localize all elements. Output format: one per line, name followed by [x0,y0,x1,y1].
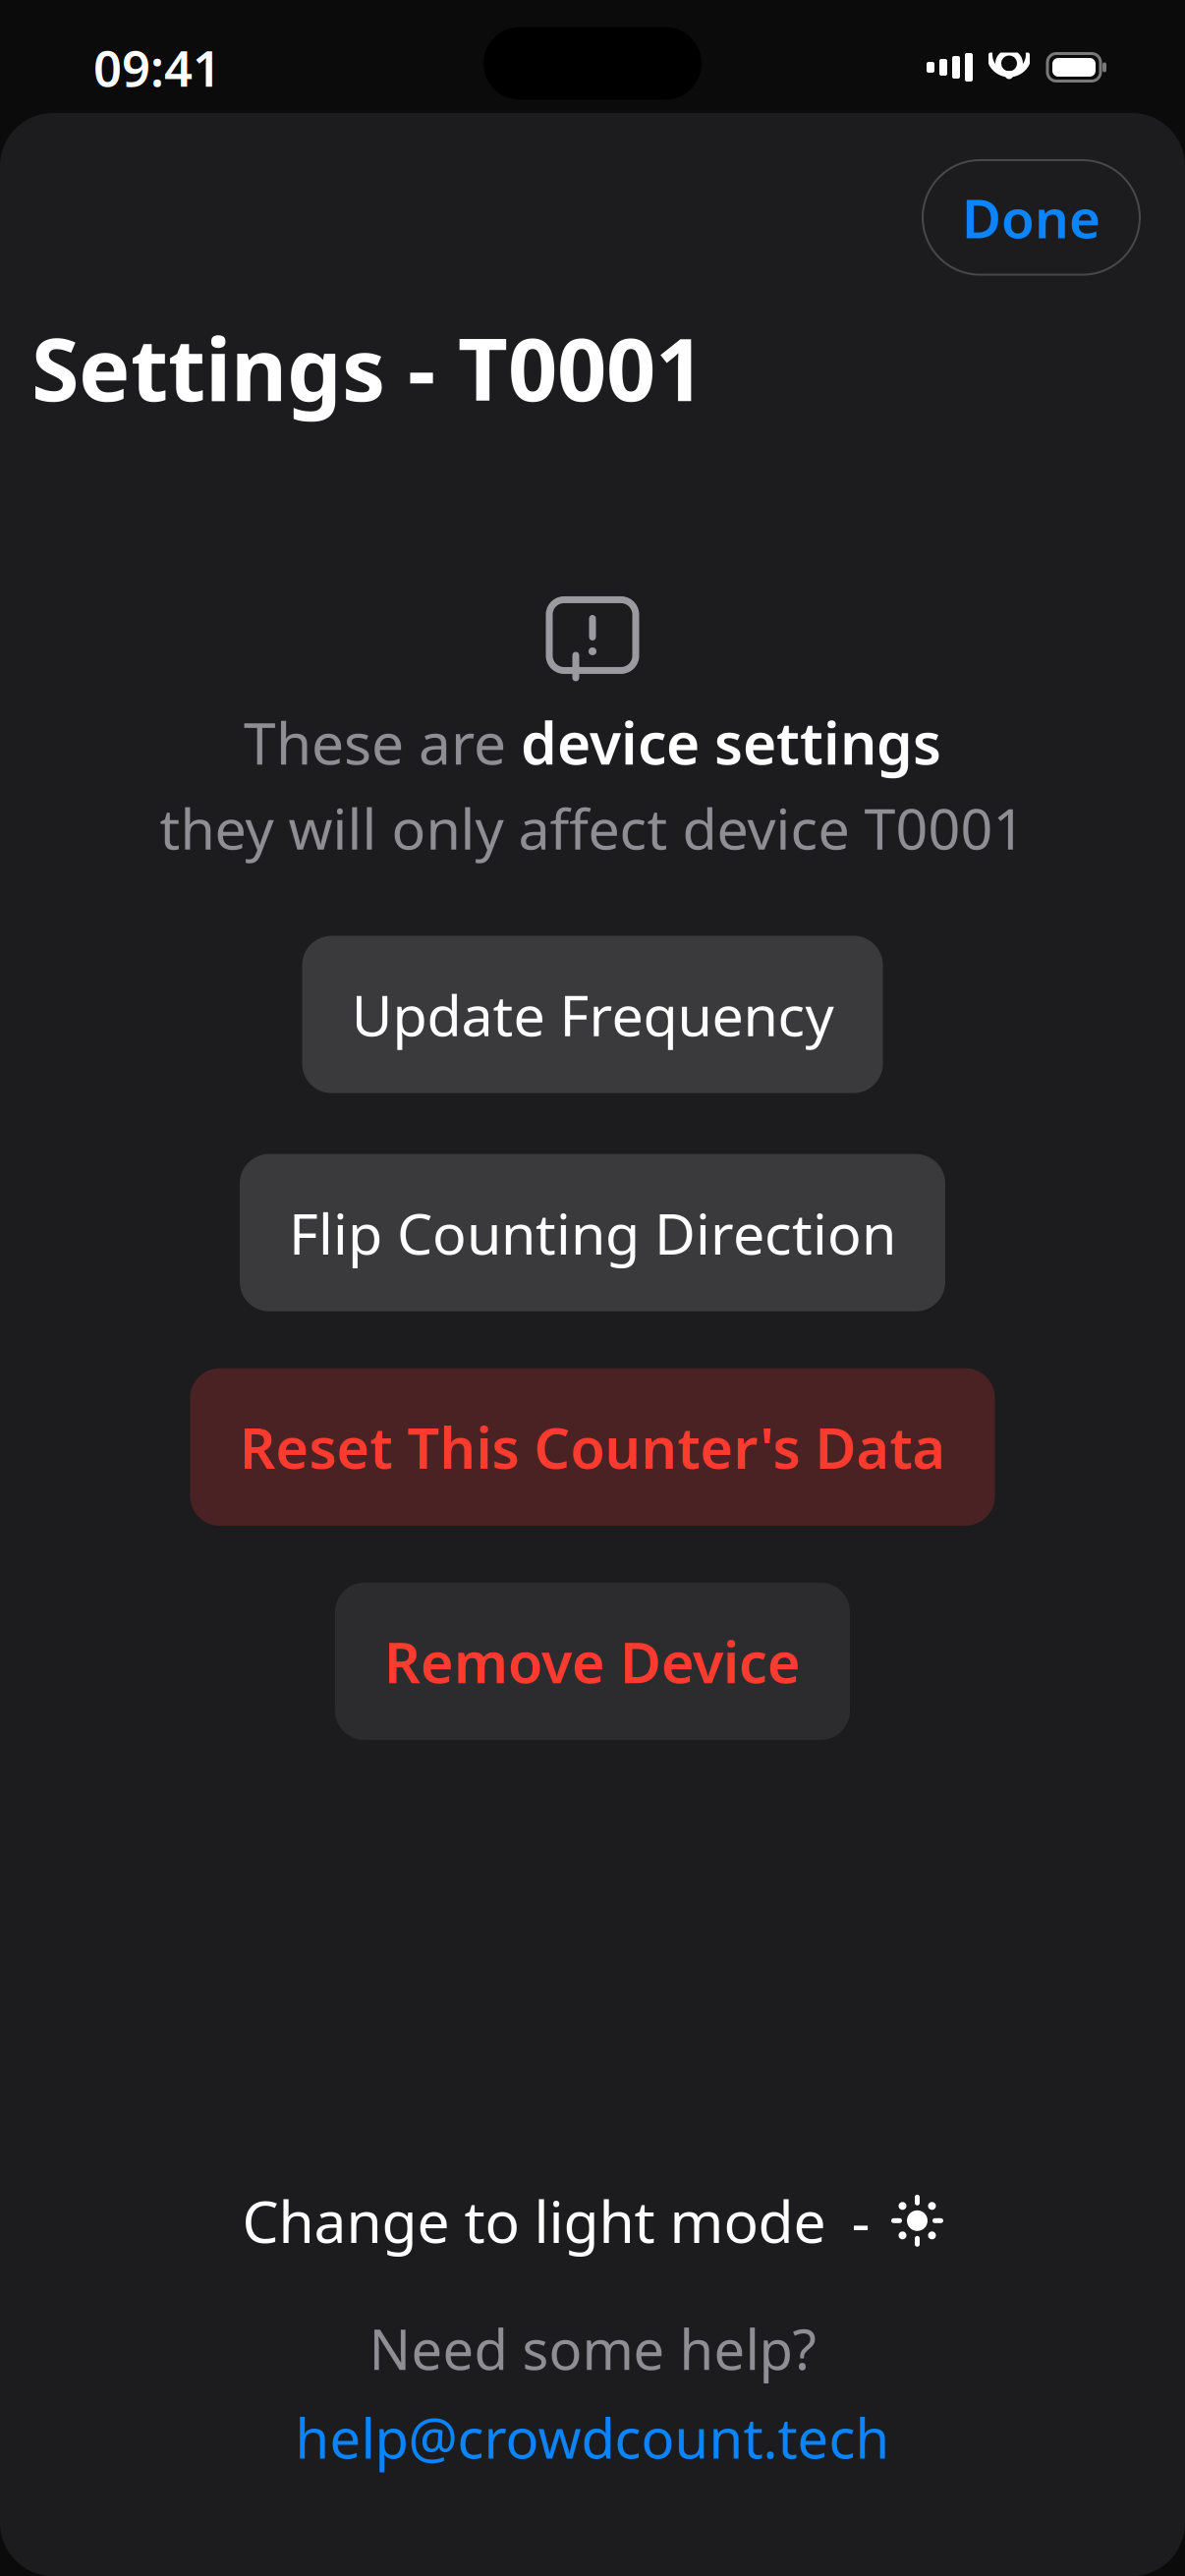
staticText: - [851,2182,870,2259]
button[interactable]: Flip Counting Direction [240,1154,945,1311]
staticText: Remove Device [384,1624,801,1699]
staticText: Reset This Counter's Data [239,1410,946,1484]
staticText: they will only affect device T0001 [160,790,1025,865]
staticText: Change to light mode [242,2182,826,2259]
button[interactable]: help@crowdcount.tech [285,2397,900,2478]
staticText: Update Frequency [351,977,834,1052]
button[interactable]: Update Frequency [302,936,883,1093]
staticText: 09:41 [93,34,221,100]
button[interactable]: Done [923,160,1140,275]
button[interactable]: Reset This Counter's Data [190,1368,995,1526]
button[interactable]: Remove Device [335,1583,850,1740]
staticText: Flip Counting Direction [289,1195,896,1270]
staticText: Settings - T0001 [31,310,705,425]
button[interactable]: Change to light mode [230,2173,955,2269]
staticText: device settings [521,704,941,780]
staticText: These are [244,704,521,780]
staticText: Need some help? [369,2312,816,2385]
staticText: Done [962,182,1100,253]
staticText: help@crowdcount.tech [295,2401,890,2474]
